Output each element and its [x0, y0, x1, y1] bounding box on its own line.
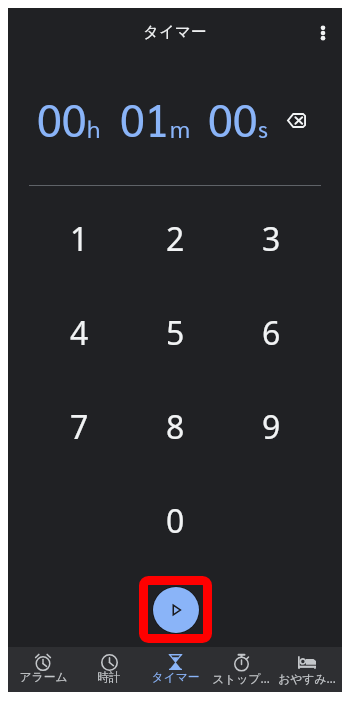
staticText: s: [258, 112, 268, 143]
button[interactable]: More options: [303, 13, 343, 53]
button[interactable]: タイマー: [142, 647, 208, 692]
button[interactable]: 5: [127, 286, 223, 380]
staticText: おやすみ…: [278, 670, 336, 686]
staticText: ストップ…: [212, 670, 270, 686]
staticText: 8: [166, 405, 185, 449]
button[interactable]: ストップ…: [208, 647, 274, 692]
staticText: 0: [166, 499, 185, 543]
button[interactable]: アラーム: [10, 647, 76, 692]
button[interactable]: 6: [223, 286, 319, 380]
button[interactable]: 4: [31, 286, 127, 380]
staticText: 時計: [97, 670, 121, 685]
staticText: 7: [70, 405, 89, 449]
button[interactable]: 0: [127, 474, 223, 568]
staticText: 3: [262, 217, 281, 261]
staticText: タイマー: [143, 22, 207, 42]
button[interactable]: 1: [31, 192, 127, 286]
button[interactable]: 8: [127, 380, 223, 474]
staticText: 00: [208, 89, 258, 147]
button[interactable]: Start timer: [152, 586, 200, 634]
staticText: h: [87, 112, 101, 143]
staticText: 1: [70, 217, 89, 261]
staticText: 01: [120, 89, 170, 147]
button[interactable]: 9: [223, 380, 319, 474]
button[interactable]: 時計: [76, 647, 142, 692]
button[interactable]: 2: [127, 192, 223, 286]
button[interactable]: 3: [223, 192, 319, 286]
staticText: アラーム: [19, 670, 68, 685]
button[interactable]: Backspace: [279, 103, 313, 137]
staticText: 9: [262, 405, 281, 449]
button[interactable]: おやすみ…: [274, 647, 340, 692]
staticText: 4: [70, 311, 89, 355]
staticText: 2: [166, 217, 185, 261]
staticText: タイマー: [151, 670, 200, 685]
staticText: m: [170, 112, 191, 143]
staticText: 5: [166, 311, 185, 355]
button[interactable]: 7: [31, 380, 127, 474]
staticText: 6: [262, 311, 281, 355]
staticText: 00: [37, 89, 87, 147]
